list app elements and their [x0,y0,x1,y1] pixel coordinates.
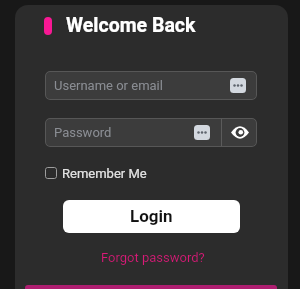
staticText: Welcome Back [66,14,196,36]
staticText: Forgot password? [101,250,205,265]
other: Autofill [194,125,210,140]
other: Autofill [230,78,246,93]
button[interactable]: Password [45,118,257,147]
button[interactable]: Forgot password? [96,246,209,268]
staticText: Username or email [54,78,163,93]
button[interactable]: Show password [222,118,257,147]
staticText: Login [130,206,173,226]
button[interactable]: Login [63,200,240,233]
button[interactable]: Username or email [45,71,257,100]
button[interactable]: Remember Me [43,164,151,182]
staticText: Password [54,125,112,140]
staticText: Remember Me [62,166,147,181]
